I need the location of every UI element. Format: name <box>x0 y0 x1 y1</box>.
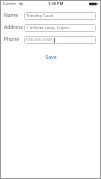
staticText: Name <box>4 12 19 19</box>
button[interactable]: 1 Infinite Loop, Cuper… <box>24 24 96 32</box>
staticText: 1:30 PM <box>48 1 64 6</box>
other: Wi-Fi signal <box>19 2 23 6</box>
button[interactable]: Save <box>41 53 61 62</box>
staticText: Timothy Cook <box>26 13 54 19</box>
staticText: Address <box>4 24 23 31</box>
button[interactable]: 555-555-5555 <box>24 36 96 44</box>
staticText: Phone <box>4 36 20 43</box>
other: Battery full <box>89 2 98 6</box>
button[interactable]: Timothy Cook <box>24 12 96 20</box>
staticText: Save <box>45 54 57 61</box>
staticText: 555-555-5555 <box>26 37 53 43</box>
staticText: 1 Infinite Loop, Cuper… <box>26 25 72 31</box>
staticText: Carrier <box>3 1 17 6</box>
